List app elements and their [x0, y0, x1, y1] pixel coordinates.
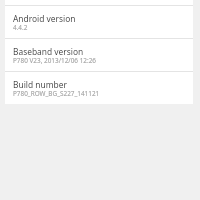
staticText: P780_ROW_BG_S227_141121	[13, 89, 100, 98]
staticText: Build number	[13, 79, 67, 90]
button[interactable]: Android version	[5, 6, 193, 38]
staticText: Android version	[13, 13, 76, 24]
staticText: 4.4.2	[13, 23, 28, 32]
staticText: Baseband version	[13, 46, 84, 57]
staticText: P780 V23, 2013/12/06 12:26	[13, 56, 97, 65]
button[interactable]: Baseband version	[5, 39, 193, 71]
button[interactable]: Build number	[5, 72, 193, 104]
